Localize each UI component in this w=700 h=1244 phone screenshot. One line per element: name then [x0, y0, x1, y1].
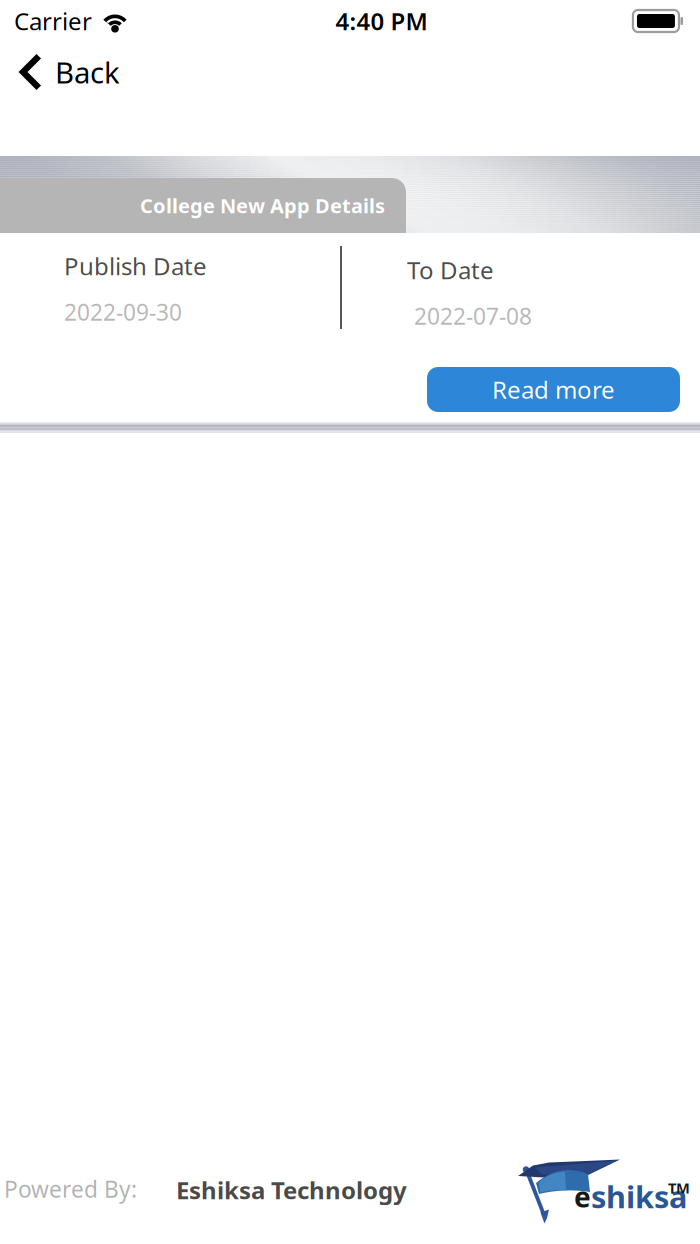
- button[interactable]: Read more: [427, 367, 680, 412]
- staticText: College New App Details: [140, 192, 385, 219]
- staticText: Back: [55, 52, 120, 91]
- staticText: Eshiksa Technology: [176, 1174, 407, 1206]
- staticText: TM: [668, 1178, 690, 1197]
- staticText: Publish Date: [64, 250, 207, 282]
- button[interactable]: Back: [0, 44, 142, 100]
- staticText: e: [574, 1178, 591, 1215]
- staticText: 4:40 PM: [335, 5, 427, 37]
- staticText: 2022-07-08: [414, 301, 532, 331]
- staticText: 2022-09-30: [64, 297, 182, 327]
- staticText: Powered By:: [4, 1174, 137, 1204]
- staticText: Read more: [492, 374, 615, 405]
- staticText: shiksa: [591, 1176, 687, 1217]
- staticText: Carrier: [14, 5, 92, 37]
- staticText: To Date: [407, 254, 494, 286]
